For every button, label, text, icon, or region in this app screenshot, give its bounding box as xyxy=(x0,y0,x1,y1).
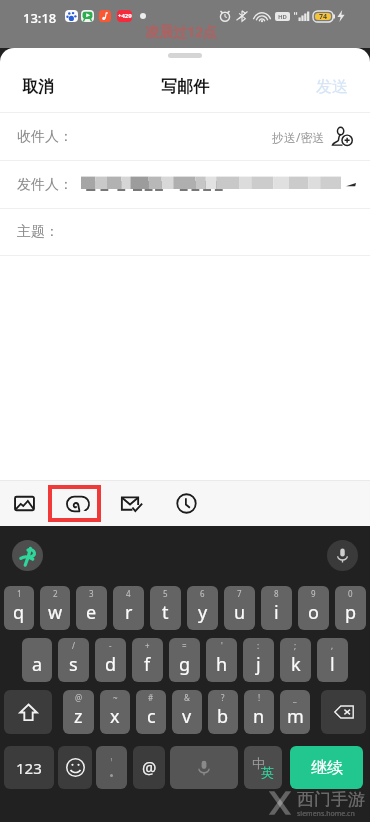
staticText: HD xyxy=(278,13,287,21)
staticText: ; xyxy=(294,640,297,651)
staticText: : xyxy=(257,640,260,651)
button[interactable]: @ xyxy=(133,746,165,789)
staticText: 7 xyxy=(237,588,242,599)
button[interactable]: Emoji xyxy=(58,746,92,789)
staticText: 英 xyxy=(261,764,274,780)
staticText: @ xyxy=(75,692,83,703)
staticText: 主题： xyxy=(17,223,59,241)
staticText: 收件人： xyxy=(17,128,73,146)
button[interactable]: 收件人： xyxy=(17,113,354,160)
button[interactable]: Voice input xyxy=(327,540,358,571)
staticText: ' xyxy=(110,753,113,771)
button[interactable]: : xyxy=(243,638,274,682)
staticText: v xyxy=(182,704,192,729)
staticText: 4 xyxy=(126,588,131,599)
staticText: h xyxy=(216,652,228,677)
button[interactable]: _ xyxy=(280,690,310,734)
staticText: 0 xyxy=(348,588,353,599)
staticText: 凌晨过12点 xyxy=(145,22,218,41)
button[interactable]: # xyxy=(136,690,166,734)
staticText: 13:18 xyxy=(23,9,57,27)
button[interactable]: Signature xyxy=(56,481,100,526)
staticText: _ xyxy=(293,692,297,703)
button[interactable]: / xyxy=(58,638,89,682)
staticText: , xyxy=(331,640,334,651)
button[interactable]: Backspace xyxy=(321,690,366,734)
button[interactable]: ! xyxy=(244,690,274,734)
staticText: 1 xyxy=(17,588,22,599)
staticText: w xyxy=(48,600,63,625)
button[interactable]: Schedule send xyxy=(164,481,208,526)
button[interactable]: 4 xyxy=(113,586,144,630)
button[interactable]: Insert image xyxy=(2,481,46,526)
staticText: r xyxy=(125,600,133,625)
staticText: 取消 xyxy=(22,77,54,97)
button[interactable]: Mail receipt xyxy=(110,481,154,526)
button[interactable]: 中 xyxy=(244,746,282,789)
staticText: o xyxy=(308,600,319,625)
button[interactable]: 9 xyxy=(298,586,329,630)
button[interactable]: , xyxy=(317,638,348,682)
button[interactable]: ; xyxy=(280,638,311,682)
staticText: t xyxy=(162,600,169,625)
button[interactable]: ~ xyxy=(100,690,130,734)
staticText: a xyxy=(32,652,43,677)
staticText: 中 xyxy=(252,755,265,771)
staticText: n xyxy=(253,704,265,729)
staticText: 继续 xyxy=(311,758,343,778)
staticText: i xyxy=(274,600,279,625)
staticText: z xyxy=(74,704,83,729)
staticText: 74 xyxy=(319,12,328,22)
button[interactable]: 发件人： xyxy=(17,161,356,208)
button[interactable]: 2 xyxy=(40,586,70,630)
button[interactable]: 发送 xyxy=(316,62,348,112)
button[interactable]: a xyxy=(22,638,52,682)
staticText: 8 xyxy=(274,588,279,599)
button[interactable]: 0 xyxy=(335,586,366,630)
staticText: k xyxy=(291,652,301,677)
button[interactable]: 123 xyxy=(4,746,54,789)
button[interactable]: 继续 xyxy=(290,746,363,789)
button[interactable]: ' xyxy=(96,746,127,789)
staticText: = xyxy=(182,640,187,651)
button[interactable]: 6 xyxy=(187,586,218,630)
button[interactable]: Space xyxy=(170,746,238,789)
button[interactable]: 1 xyxy=(4,586,34,630)
button[interactable]: Shift xyxy=(4,690,52,734)
button[interactable]: 5 xyxy=(150,586,181,630)
button[interactable]: & xyxy=(172,690,202,734)
staticText: - xyxy=(109,640,112,651)
staticText: m xyxy=(287,704,304,729)
staticText: 6 xyxy=(200,588,205,599)
button[interactable]: 7 xyxy=(224,586,255,630)
staticText: e xyxy=(86,600,97,625)
staticText: 3 xyxy=(89,588,94,599)
staticText: 发送 xyxy=(316,77,348,97)
staticText: ! xyxy=(258,692,261,703)
staticText: 西门手游 xyxy=(297,789,365,810)
button[interactable]: + xyxy=(132,638,163,682)
button[interactable]: 3 xyxy=(76,586,107,630)
staticText: 5 xyxy=(163,588,168,599)
staticText: & xyxy=(184,692,190,703)
button[interactable]: ' xyxy=(206,638,237,682)
staticText: @ xyxy=(142,757,157,779)
staticText: ' xyxy=(221,640,223,651)
button[interactable]: 主题： xyxy=(17,209,354,255)
staticText: u xyxy=(234,600,246,625)
button[interactable]: 取消 xyxy=(22,62,54,112)
button[interactable]: = xyxy=(169,638,200,682)
button[interactable]: 8 xyxy=(261,586,292,630)
button[interactable]: ? xyxy=(208,690,238,734)
staticText: 2 xyxy=(53,588,58,599)
button[interactable]: - xyxy=(95,638,126,682)
staticText: + xyxy=(145,640,150,651)
staticText: # xyxy=(148,692,154,703)
button[interactable]: @ xyxy=(63,690,94,734)
staticText: g xyxy=(179,652,191,677)
staticText: f xyxy=(144,652,151,677)
staticText: c xyxy=(147,704,156,729)
staticText: 发件人： xyxy=(17,176,73,194)
button[interactable]: Input method settings xyxy=(12,540,43,571)
staticText: q xyxy=(13,600,25,625)
